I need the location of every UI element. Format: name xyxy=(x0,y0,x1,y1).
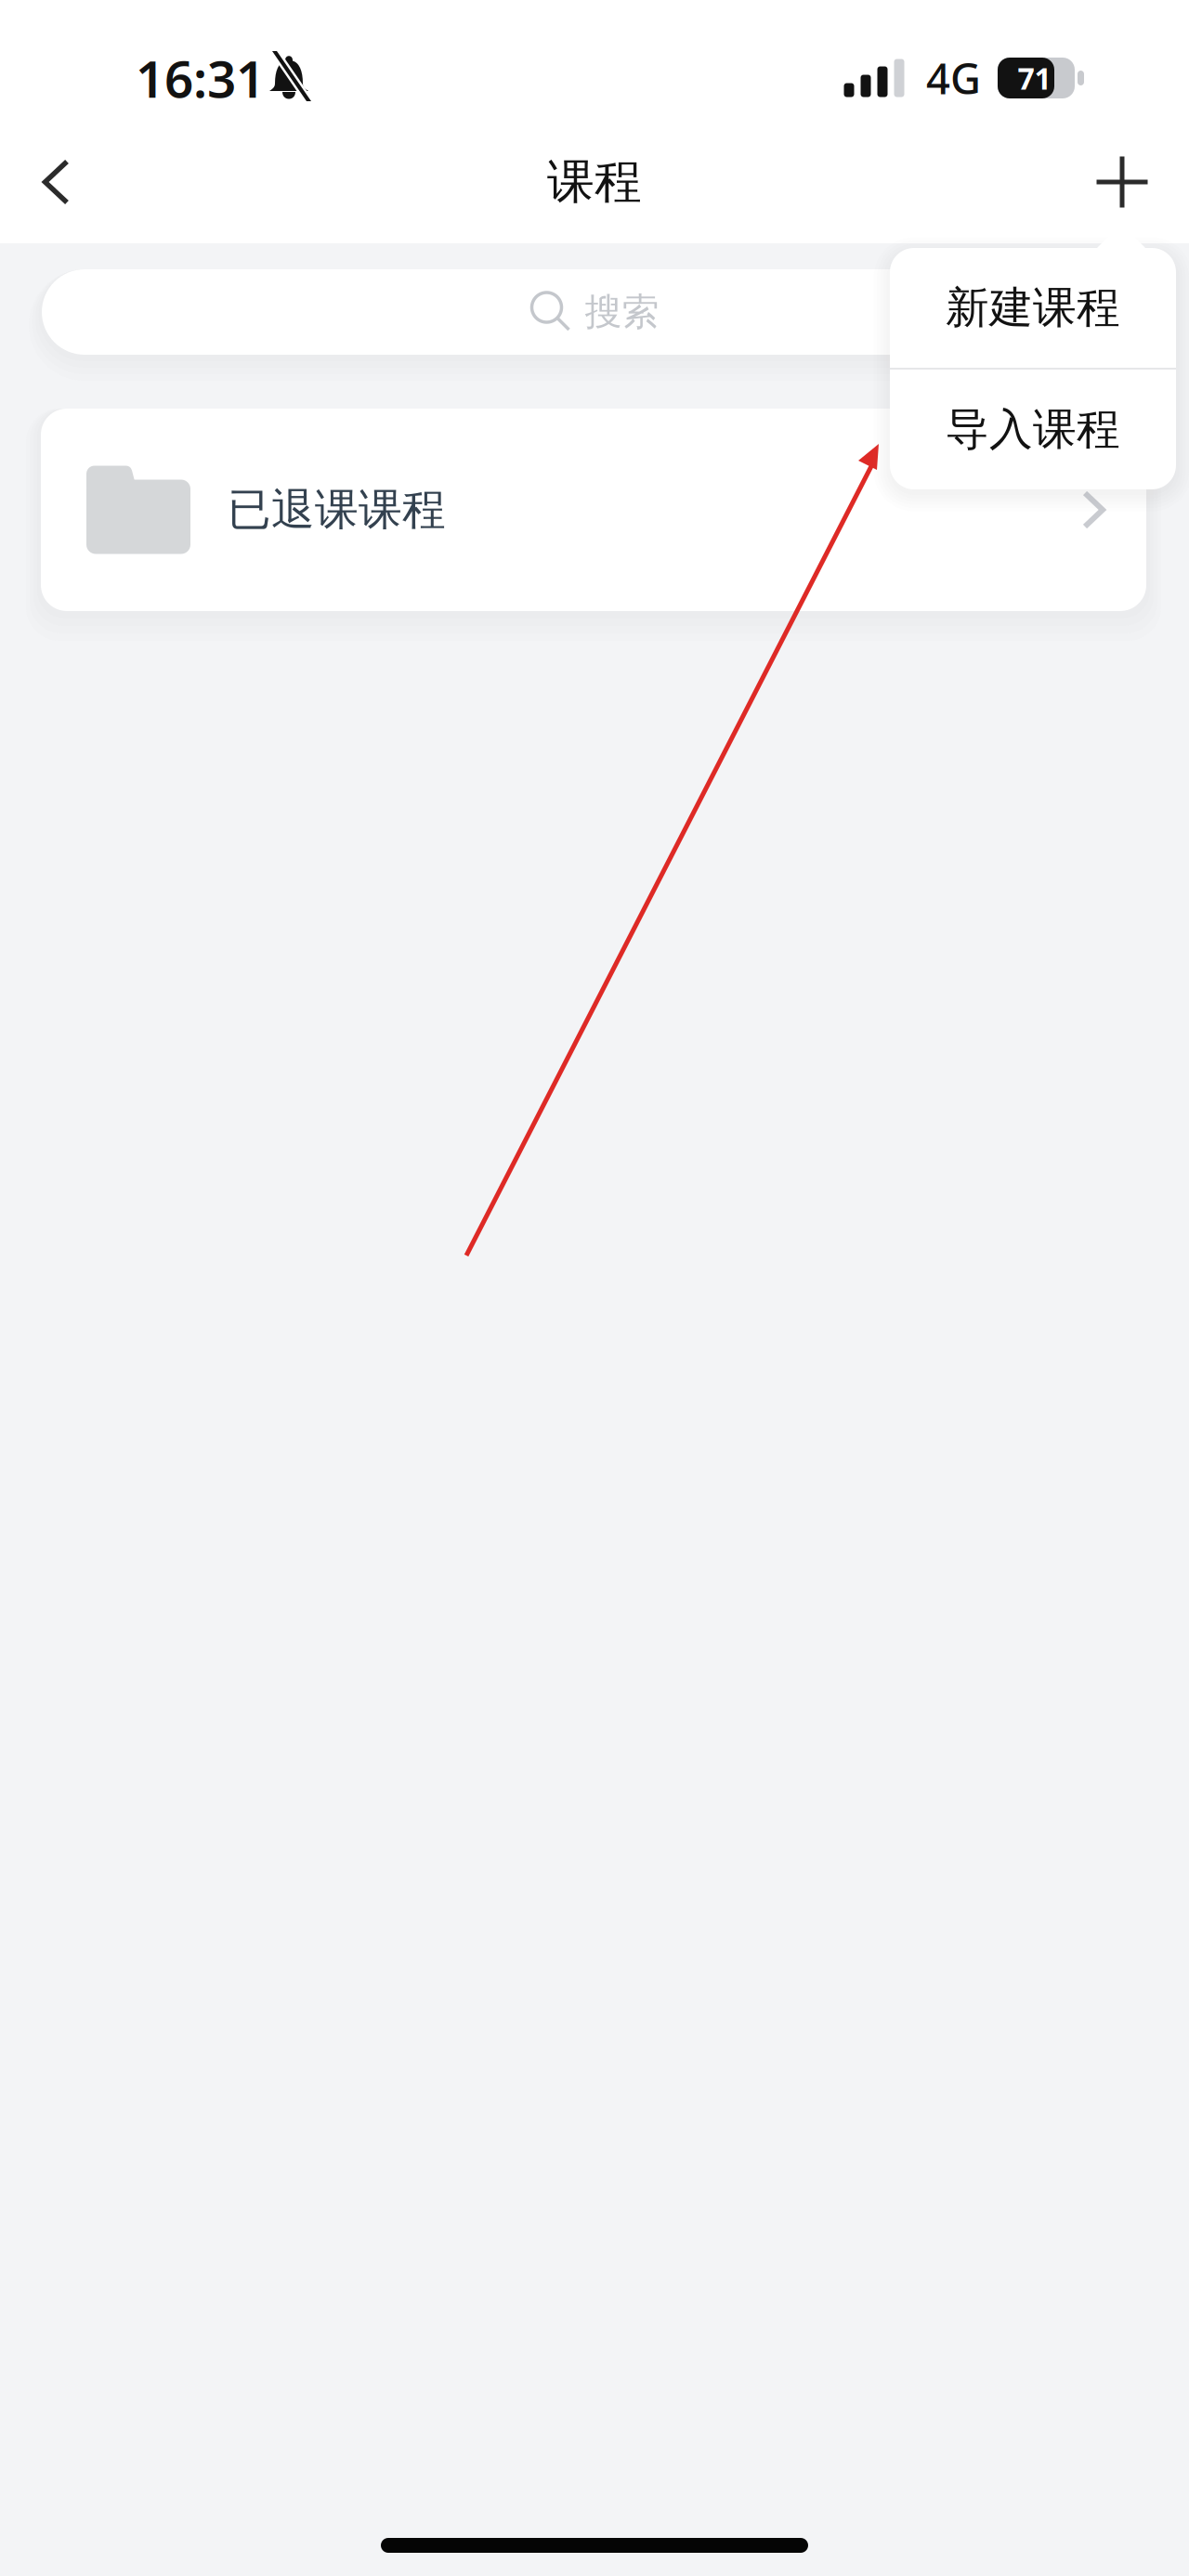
button[interactable]: Back xyxy=(0,126,144,238)
button[interactable]: 新建课程 xyxy=(890,248,1176,368)
button[interactable]: 导入课程 xyxy=(890,370,1176,489)
staticText: 71 xyxy=(1018,58,1051,98)
button[interactable]: 已退课课程 xyxy=(41,409,1146,611)
button[interactable]: 搜索 xyxy=(42,269,1146,355)
staticText: 已退课课程 xyxy=(228,483,446,536)
staticText: 导入课程 xyxy=(946,403,1120,456)
staticText: 16:31 xyxy=(136,44,265,112)
staticText: 4G xyxy=(926,50,981,106)
staticText: 搜索 xyxy=(585,289,659,335)
button[interactable]: Add xyxy=(1046,126,1189,238)
staticText: 新建课程 xyxy=(946,281,1120,334)
staticText: 课程 xyxy=(547,153,642,211)
